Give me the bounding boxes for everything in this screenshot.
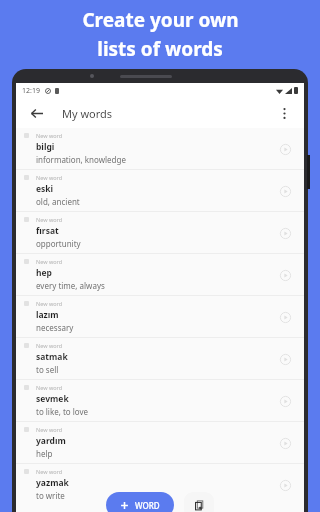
staticText: every time, always	[36, 280, 105, 291]
staticText: bilgi	[36, 141, 55, 153]
button[interactable]: New word	[16, 128, 304, 169]
staticText: New word	[36, 384, 63, 391]
button[interactable]: Play pronunciation	[274, 138, 296, 160]
button[interactable]: New word	[16, 212, 304, 253]
staticText: hep	[36, 267, 52, 279]
staticText: New word	[36, 342, 63, 349]
staticText: New word	[36, 468, 63, 475]
staticText: sevmek	[36, 393, 69, 405]
button[interactable]: Play pronunciation	[274, 390, 296, 412]
staticText: yardım	[36, 435, 66, 447]
button[interactable]: Play pronunciation	[274, 432, 296, 454]
staticText: New word	[36, 426, 63, 433]
button[interactable]: New word	[16, 254, 304, 295]
staticText: eski	[36, 183, 54, 195]
staticText: to write	[36, 490, 65, 501]
staticText: to sell	[36, 364, 59, 375]
button[interactable]: Play pronunciation	[274, 264, 296, 286]
staticText: New word	[36, 216, 63, 223]
staticText: My words	[62, 106, 113, 121]
button[interactable]: Play pronunciation	[274, 348, 296, 370]
staticText: help	[36, 448, 53, 459]
button[interactable]: More options	[272, 101, 296, 125]
staticText: WORD	[135, 500, 160, 511]
staticText: necessary	[36, 322, 74, 333]
button[interactable]: New word	[16, 296, 304, 337]
staticText: opportunity	[36, 238, 81, 249]
staticText: fırsat	[36, 225, 59, 237]
staticText: New word	[36, 300, 63, 307]
staticText: information, knowledge	[36, 154, 126, 165]
button[interactable]: New word	[16, 464, 304, 505]
staticText: Create your own	[82, 7, 239, 33]
staticText: New word	[36, 132, 63, 139]
staticText: 12:19	[22, 86, 40, 96]
button[interactable]: New word	[16, 170, 304, 211]
button[interactable]: Import words from file	[184, 492, 214, 512]
staticText: New word	[36, 174, 63, 181]
button[interactable]: New word	[16, 338, 304, 379]
staticText: lazım	[36, 309, 59, 321]
button[interactable]: Play pronunciation	[274, 222, 296, 244]
staticText: lists of words	[97, 36, 223, 62]
staticText: New word	[36, 258, 63, 265]
button[interactable]: Play pronunciation	[274, 306, 296, 328]
staticText: to like, to love	[36, 406, 89, 417]
button[interactable]: New word	[16, 380, 304, 421]
staticText: satmak	[36, 351, 68, 363]
button[interactable]: Play pronunciation	[274, 180, 296, 202]
button[interactable]: Play pronunciation	[274, 474, 296, 496]
staticText: yazmak	[36, 477, 69, 489]
button[interactable]: WORD	[106, 492, 174, 512]
staticText: old, ancient	[36, 196, 80, 207]
button[interactable]: Back	[24, 101, 48, 125]
button[interactable]: New word	[16, 422, 304, 463]
